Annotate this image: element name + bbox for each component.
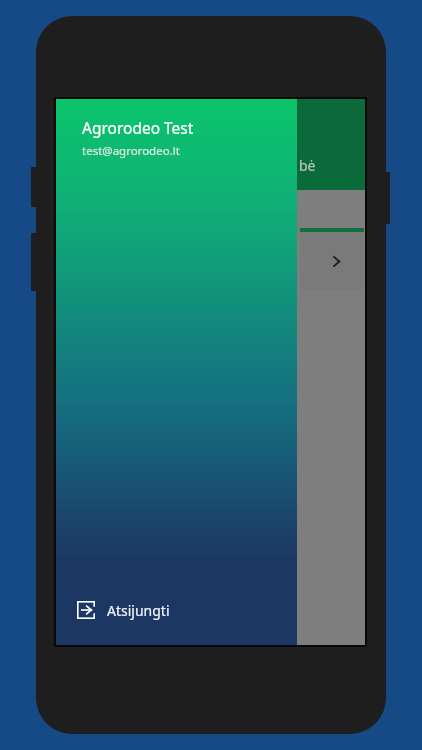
button[interactable]: Open <box>300 228 364 290</box>
staticText: test@agrorodeo.lt <box>82 143 180 159</box>
other: Open <box>329 254 344 269</box>
staticText: Agrorodeo Test <box>82 117 194 138</box>
staticText: Atsijungti <box>107 601 170 620</box>
button[interactable]: Atsijungti <box>56 587 297 633</box>
staticText: bė <box>299 156 316 175</box>
